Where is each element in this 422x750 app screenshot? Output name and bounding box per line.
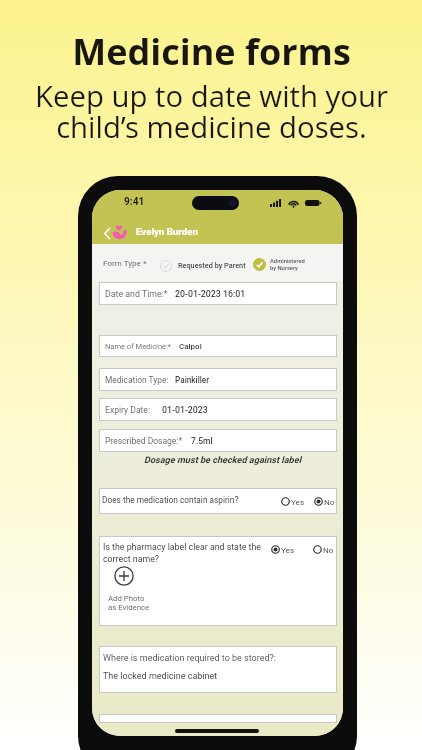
button[interactable]: Date and Time:* <box>99 282 337 305</box>
button[interactable]: Add photo as evidence <box>114 566 134 586</box>
staticText: Where is medication required to be store… <box>103 653 276 664</box>
button[interactable]: Medication Type: <box>99 368 337 391</box>
button[interactable]: No <box>313 543 334 555</box>
staticText: No <box>324 497 335 506</box>
button[interactable]: Name of Medicine:* <box>99 335 337 357</box>
staticText: 20-01-2023 16:01 <box>175 289 246 299</box>
staticText: Yes <box>291 497 305 506</box>
staticText: Painkiller <box>175 375 210 385</box>
button[interactable]: Requested by Parent <box>160 258 246 273</box>
button[interactable]: No <box>314 495 335 507</box>
staticText: Yes <box>281 545 295 554</box>
staticText: Is the pharmacy label clear and state th… <box>103 542 261 564</box>
staticText: Administered by Nursery <box>270 258 305 271</box>
staticText: Expiry Date: <box>105 405 151 415</box>
staticText: Keep up to date with your child’s medici… <box>35 76 388 147</box>
staticText: Requested by Parent <box>178 261 246 270</box>
staticText: No <box>323 545 334 554</box>
staticText: Name of Medicine:* <box>105 342 172 351</box>
staticText: Form Type * <box>103 258 147 267</box>
staticText: Date and Time:* <box>105 289 168 299</box>
button[interactable]: Expiry Date: <box>99 398 337 421</box>
staticText: Evelyn Burden <box>136 226 198 237</box>
staticText: Prescribed Dosage:* <box>105 436 183 446</box>
staticText: Dosage must be checked against label <box>144 455 302 466</box>
button[interactable]: Back <box>103 227 111 240</box>
staticText: Calpol <box>179 342 202 351</box>
staticText: Medication Type: <box>105 375 169 385</box>
button[interactable]: Yes <box>281 495 305 507</box>
staticText: Add Photo as Evidence <box>108 594 150 612</box>
button[interactable]: Prescribed Dosage:* <box>99 429 337 452</box>
staticText: 9:41 <box>124 196 145 208</box>
staticText: Does the medication contain aspirin? <box>102 495 239 505</box>
staticText: 7.5ml <box>191 436 213 446</box>
staticText: Medicine forms <box>72 27 351 76</box>
button[interactable]: Administered by Nursery <box>253 257 305 272</box>
staticText: 01-01-2023 <box>162 405 208 415</box>
button[interactable]: Yes <box>271 543 295 555</box>
staticText: The locked medicine cabinet <box>103 671 218 682</box>
